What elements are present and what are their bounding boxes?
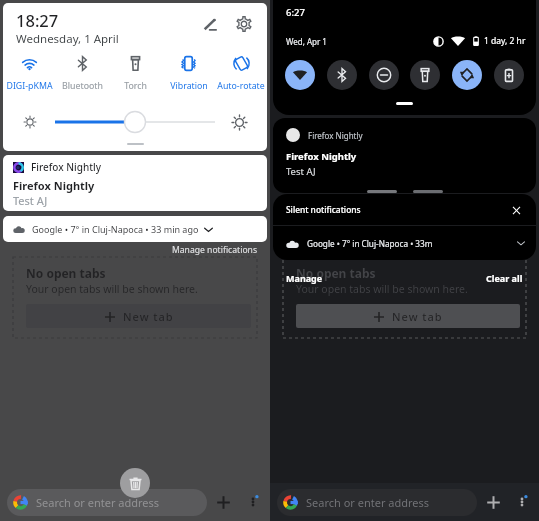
staticText: New tab (123, 309, 174, 324)
button[interactable]: Bluetooth (56, 55, 109, 92)
staticText: Vibration (170, 80, 208, 92)
staticText: Wednesday, 1 April (16, 31, 119, 47)
button[interactable]: Auto rotate (452, 60, 482, 90)
staticText: Your open tabs will be shown here. (26, 282, 198, 296)
button[interactable]: New tab (480, 489, 506, 515)
button[interactable]: Clear all (486, 272, 523, 284)
staticText: Silent notifications (286, 204, 361, 215)
button[interactable]: Vibration (162, 55, 215, 92)
staticText: Your open tabs will be shown here. (296, 282, 468, 296)
button[interactable]: More options (509, 489, 535, 515)
staticText: Torch (124, 80, 147, 92)
staticText: Google • 7° in Cluj-Napoca • 33 min ago (32, 223, 199, 235)
staticText: Manage notifications (172, 244, 258, 256)
staticText: New tab (392, 309, 443, 324)
button[interactable]: Manage notifications (172, 244, 258, 256)
staticText: No open tabs (26, 265, 106, 281)
button[interactable]: Close tab (120, 468, 150, 498)
button[interactable]: Search or enter address (277, 489, 477, 516)
staticText: Auto-rotate (217, 80, 265, 92)
staticText: DIGI-pKMA (6, 80, 53, 92)
staticText: Manage (286, 272, 323, 284)
button[interactable]: More options (240, 489, 266, 515)
button[interactable]: Wi-Fi (285, 60, 315, 90)
staticText: Firefox Nightly (13, 178, 95, 193)
staticText: Bluetooth (62, 80, 103, 92)
button[interactable]: Search or enter address (7, 489, 207, 516)
button[interactable]: Battery saver (494, 60, 524, 90)
button[interactable]: New tab (296, 304, 520, 328)
button[interactable]: Do not disturb (369, 60, 399, 90)
staticText: Google • 7° in Cluj-Napoca • 33m (307, 238, 433, 249)
staticText: 6:27 (286, 6, 305, 19)
button[interactable]: New tab (26, 304, 251, 328)
button[interactable]: Dismiss (506, 200, 526, 220)
button[interactable]: Google • 7° in Cluj-Napoca • 33 min ago (3, 216, 267, 242)
button[interactable]: Flashlight (410, 60, 440, 90)
button[interactable]: Google • 7° in Cluj-Napoca • 33m (273, 226, 536, 260)
button[interactable]: Manage (286, 272, 323, 284)
staticText: Firefox Nightly (31, 160, 101, 174)
staticText: Wed, Apr 1 (286, 36, 327, 47)
staticText: Test AJ (13, 193, 48, 208)
staticText: 1 day, 2 hr (484, 35, 526, 47)
button[interactable]: Firefox Nightly (273, 118, 536, 193)
staticText: Search or enter address (36, 495, 160, 510)
button[interactable]: Edit (195, 9, 225, 39)
button[interactable]: Settings (229, 9, 259, 39)
staticText: Clear all (486, 272, 523, 284)
staticText: Firefox Nightly (308, 130, 363, 141)
button[interactable]: Auto-rotate (215, 55, 267, 92)
staticText: Test AJ (286, 165, 316, 178)
button[interactable]: New tab (210, 489, 236, 515)
button[interactable]: Firefox Nightly (3, 155, 267, 211)
button[interactable]: Torch (109, 55, 162, 92)
staticText: 18:27 (16, 9, 59, 31)
button[interactable]: DIGI-pKMA (3, 55, 56, 92)
button[interactable]: Bluetooth (327, 60, 357, 90)
staticText: Search or enter address (306, 495, 430, 510)
staticText: No open tabs (296, 265, 376, 281)
staticText: Firefox Nightly (286, 150, 357, 163)
